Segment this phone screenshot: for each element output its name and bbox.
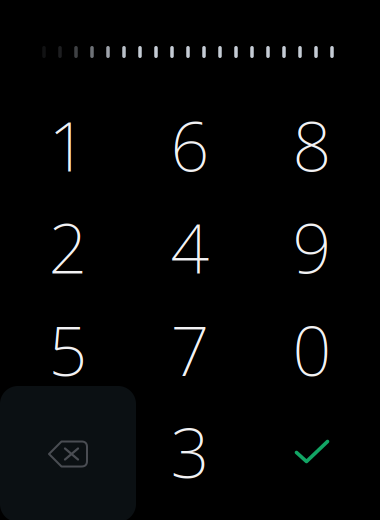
staticText: 6 (170, 100, 209, 190)
button[interactable]: 9 (251, 196, 373, 298)
staticText: 3 (170, 406, 209, 497)
staticText: 2 (48, 202, 87, 292)
staticText: 5 (48, 304, 87, 395)
staticText: 0 (292, 304, 331, 395)
button[interactable]: 7 (129, 298, 251, 400)
button[interactable]: 3 (129, 400, 251, 502)
staticText: 9 (292, 202, 331, 292)
button[interactable]: Confirm (251, 400, 373, 502)
button[interactable]: 1 (7, 94, 129, 196)
staticText: 8 (292, 100, 331, 190)
button[interactable]: 5 (7, 298, 129, 400)
button[interactable]: 2 (7, 196, 129, 298)
staticText: 7 (170, 304, 209, 395)
button[interactable]: 4 (129, 196, 251, 298)
button[interactable]: 0 (251, 298, 373, 400)
button[interactable]: Delete (0, 386, 136, 520)
button[interactable]: 6 (129, 94, 251, 196)
button[interactable]: 8 (251, 94, 373, 196)
staticText: 4 (170, 202, 209, 292)
staticText: 1 (48, 100, 87, 190)
